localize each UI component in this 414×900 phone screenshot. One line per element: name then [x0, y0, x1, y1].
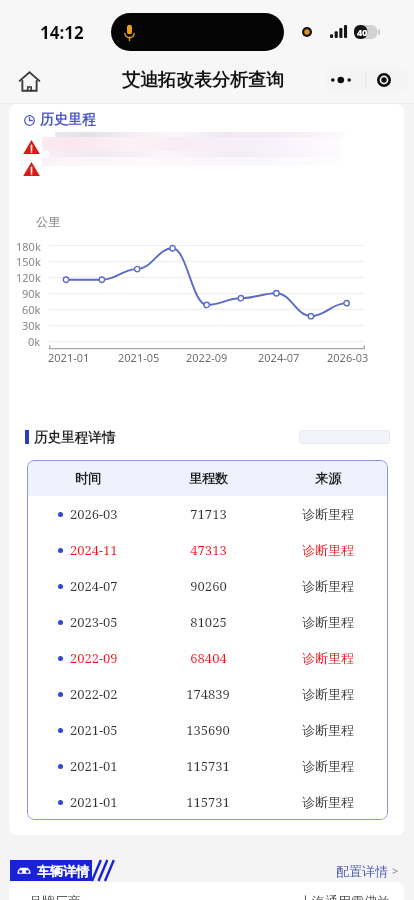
staticText: 90260 [190, 577, 227, 595]
staticText: 40 [357, 26, 368, 38]
staticText: 120k [16, 270, 41, 285]
staticText: 艾迪拓改表分析查询 [122, 69, 284, 92]
staticText: 14:12 [40, 21, 84, 44]
staticText: 174839 [186, 685, 230, 703]
staticText: 品牌厂商 [29, 893, 81, 900]
staticText: 0k [28, 334, 41, 349]
button[interactable]: 2023-05 [27, 604, 388, 640]
staticText: 2021-01 [70, 757, 118, 775]
staticText: 诊断里程 [302, 722, 354, 738]
staticText: 2024-07 [70, 577, 118, 595]
staticText: 2022-09 [186, 350, 228, 365]
staticText: 来源 [315, 470, 341, 486]
button[interactable]: 2021-05 [27, 712, 388, 748]
staticText: 诊断里程 [302, 686, 354, 702]
staticText: 71713 [190, 505, 227, 523]
staticText: 2021-05 [70, 721, 118, 739]
staticText: 60k [22, 302, 41, 317]
staticText: 历史里程详情 [34, 429, 115, 446]
staticText: 2023-05 [70, 613, 118, 631]
staticText: 90k [22, 286, 41, 301]
button[interactable]: 2026-03 [27, 496, 388, 532]
staticText: 配置详情 [336, 863, 388, 879]
staticText: 115731 [186, 793, 230, 811]
staticText: 诊断里程 [302, 758, 354, 774]
staticText: 2021-01 [70, 793, 118, 811]
staticText: 车辆详情 [37, 863, 89, 879]
staticText: 81025 [190, 613, 227, 631]
button[interactable]: 车辆详情 [10, 860, 92, 881]
staticText: 里程数 [189, 470, 228, 486]
staticText: 150k [16, 254, 41, 269]
button[interactable]: 2022-02 [27, 676, 388, 712]
button[interactable]: 2021-01 [27, 748, 388, 784]
staticText: 2021-05 [118, 350, 160, 365]
staticText: 30k [22, 318, 41, 333]
button[interactable]: 2021-01 [27, 784, 388, 820]
button[interactable]: More [325, 67, 361, 93]
staticText: 180k [16, 239, 41, 254]
staticText: 诊断里程 [302, 794, 354, 810]
staticText: 2022-09 [70, 649, 118, 667]
button[interactable]: Home [9, 61, 49, 101]
button[interactable]: Close [363, 67, 405, 93]
staticText: 诊断里程 [302, 614, 354, 630]
button[interactable]: 2024-11 [27, 532, 388, 568]
staticText: 诊断里程 [302, 506, 354, 522]
staticText: 上汽通用雪佛兰 [299, 893, 390, 900]
staticText: 47313 [190, 541, 227, 559]
button[interactable]: 2022-09 [27, 640, 388, 676]
staticText: 诊断里程 [302, 578, 354, 594]
staticText: 历史里程 [40, 111, 96, 129]
staticText: 2024-11 [70, 541, 118, 559]
staticText: 公里 [36, 214, 60, 229]
staticText: 135690 [186, 721, 230, 739]
staticText: 115731 [186, 757, 230, 775]
button[interactable]: 2024-07 [27, 568, 388, 604]
staticText: 2022-02 [70, 685, 118, 703]
staticText: 时间 [75, 470, 101, 486]
staticText: 68404 [190, 649, 227, 667]
staticText: 2024-07 [258, 350, 300, 365]
staticText: > [392, 863, 399, 878]
staticText: 2021-01 [48, 350, 90, 365]
staticText: 诊断里程 [302, 542, 354, 558]
button[interactable]: 配置详情 [336, 860, 399, 881]
staticText: 2026-03 [70, 505, 118, 523]
staticText: 诊断里程 [302, 650, 354, 666]
staticText: 2026-03 [327, 350, 369, 365]
